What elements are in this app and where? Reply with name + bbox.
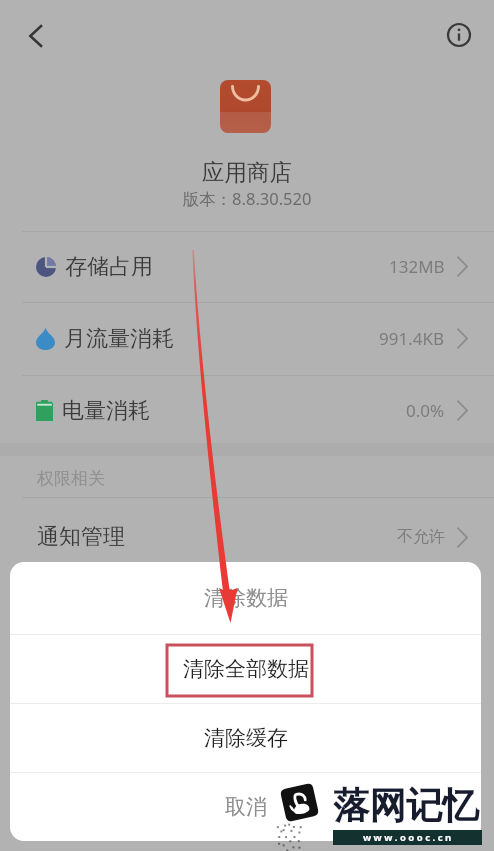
button[interactable]: 月流量消耗 (0, 302, 494, 375)
staticText: 电量消耗 (62, 397, 150, 425)
staticText: 通知管理 (37, 523, 125, 551)
staticText: 版本：8.8.30.520 (0, 187, 494, 210)
staticText: 取消 (225, 794, 267, 820)
staticText: 132MB (389, 255, 445, 278)
staticText: 991.4KB (379, 327, 445, 350)
button[interactable]: 电量消耗 (0, 375, 494, 446)
staticText: 应用商店 (0, 158, 494, 186)
button[interactable]: 清除缓存 (10, 703, 481, 772)
staticText: 0.0% (406, 399, 445, 422)
staticText: 落网记忆 (333, 784, 479, 830)
staticText: 存储占用 (65, 253, 153, 281)
staticText: 落网记忆 (332, 783, 478, 829)
staticText: 落网记忆 (334, 783, 480, 829)
staticText: 权限相关 (37, 468, 105, 489)
staticText: 月流量消耗 (64, 325, 174, 353)
button[interactable]: 清除全部数据 (10, 634, 481, 703)
staticText: 不允许 (397, 527, 445, 547)
staticText: 清除数据 (204, 585, 288, 611)
staticText: 落网记忆 (333, 782, 479, 828)
button[interactable]: 存储占用 (0, 231, 494, 302)
button[interactable]: Back (13, 14, 57, 58)
button[interactable]: 取消 (10, 772, 481, 841)
button[interactable]: Info (437, 13, 481, 57)
staticText: w w w . o o o c . c n (363, 831, 452, 844)
staticText: 落网记忆 (333, 783, 479, 829)
button[interactable]: 通知管理 (0, 502, 494, 572)
staticText: 清除缓存 (204, 725, 288, 751)
staticText: 清除全部数据 (183, 656, 309, 682)
